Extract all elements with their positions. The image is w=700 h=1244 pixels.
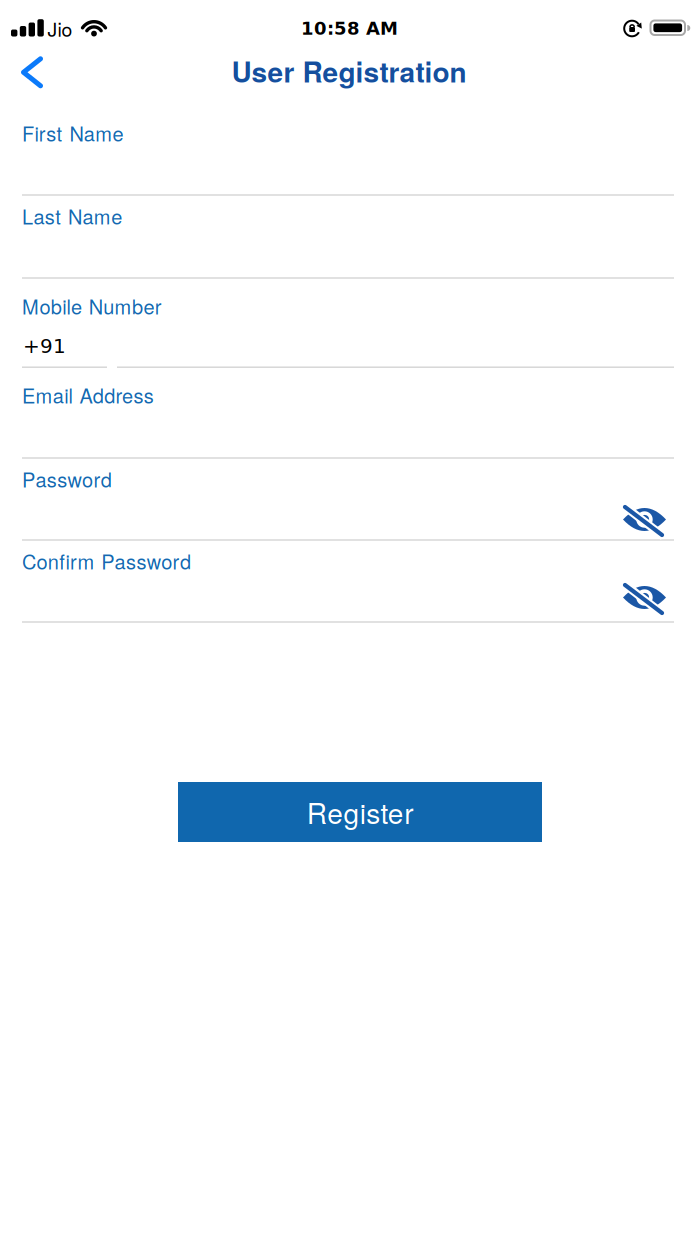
staticText: Email Address (22, 380, 154, 409)
staticText: User Registration (231, 51, 466, 91)
staticText: Last Name (22, 201, 122, 230)
button[interactable]: Register (178, 782, 542, 842)
button[interactable]: Show password (619, 499, 669, 539)
staticText: Password (22, 464, 112, 493)
staticText: First Name (22, 118, 124, 147)
button[interactable]: Show confirm password (619, 577, 669, 617)
staticText: 10:58 AM (301, 18, 398, 39)
staticText: Mobile Number (22, 291, 162, 320)
staticText: Confirm Password (22, 546, 191, 575)
staticText: +91 (23, 334, 66, 358)
staticText: Register (307, 792, 413, 832)
button[interactable]: Back (10, 50, 54, 94)
staticText: Jio (47, 15, 72, 42)
